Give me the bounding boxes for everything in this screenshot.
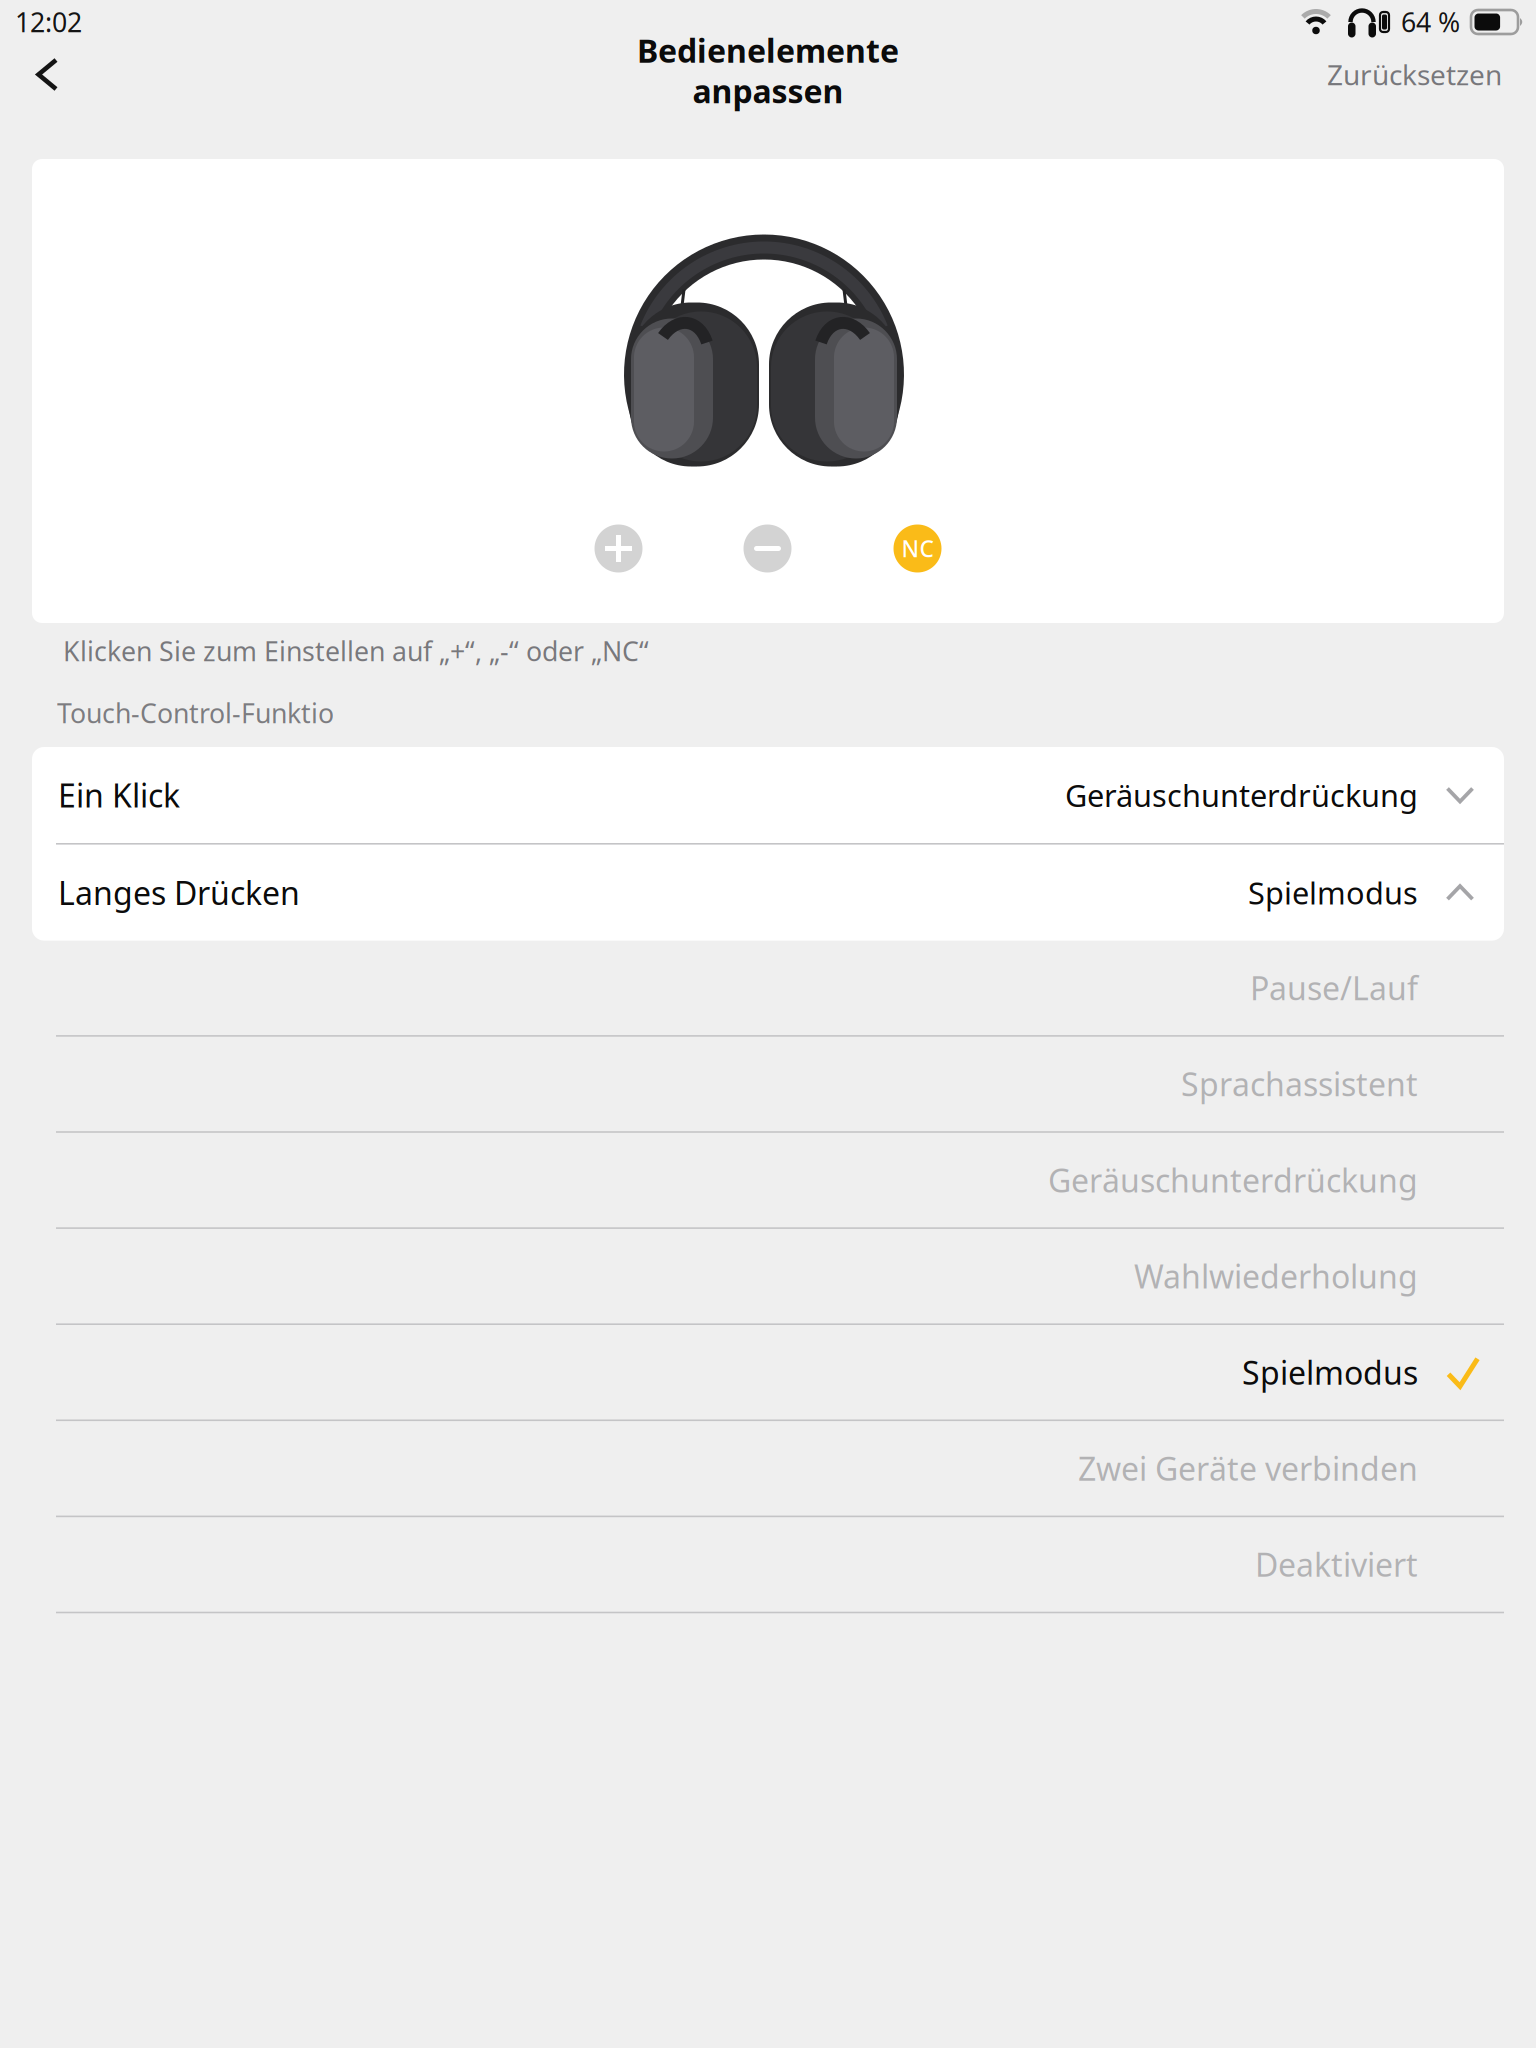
staticText: NC [901, 533, 933, 563]
button[interactable]: Leiser [743, 524, 791, 572]
staticText: 64 % [1401, 4, 1460, 40]
staticText: Bedienelemente [637, 29, 899, 71]
staticText: Ein Klick [58, 774, 180, 816]
button[interactable]: Zwei Geräte verbinden [32, 1421, 1504, 1517]
button[interactable]: Ein Klick [32, 747, 1504, 843]
button[interactable]: Pause/Lauf [32, 941, 1504, 1037]
staticText: Zwei Geräte verbinden [1078, 1447, 1418, 1490]
button[interactable]: Sprachassistent [32, 1037, 1504, 1133]
staticText: Geräuschunterdrückung [1048, 1159, 1418, 1201]
button[interactable]: Spielmodus [32, 1325, 1504, 1421]
staticText: 12:02 [15, 4, 82, 40]
button[interactable]: Langes Drücken [32, 845, 1504, 941]
button[interactable]: Zurücksetzen [1307, 38, 1536, 111]
button[interactable]: NC [893, 524, 941, 572]
staticText: Zurücksetzen [1327, 56, 1502, 93]
staticText: Spielmodus [1248, 872, 1418, 913]
staticText: Klicken Sie zum Einstellen auf „+“, „-“ … [63, 633, 649, 669]
button[interactable]: Lauter [594, 524, 642, 572]
button[interactable]: Zurück [0, 41, 80, 107]
staticText: Pause/Lauf [1250, 967, 1418, 1009]
staticText: Langes Drücken [58, 871, 300, 914]
button[interactable]: Deaktiviert [32, 1517, 1504, 1613]
staticText: Wahlwiederholung [1134, 1255, 1418, 1297]
button[interactable]: Wahlwiederholung [32, 1229, 1504, 1325]
button[interactable]: Geräuschunterdrückung [32, 1133, 1504, 1229]
staticText: Deaktiviert [1255, 1543, 1418, 1586]
staticText: Spielmodus [1242, 1351, 1418, 1393]
staticText: Sprachassistent [1181, 1063, 1418, 1105]
staticText: Touch-Control-Funktio [57, 695, 334, 731]
staticText: Geräuschunterdrückung [1065, 775, 1418, 815]
staticText: anpassen [692, 69, 843, 112]
